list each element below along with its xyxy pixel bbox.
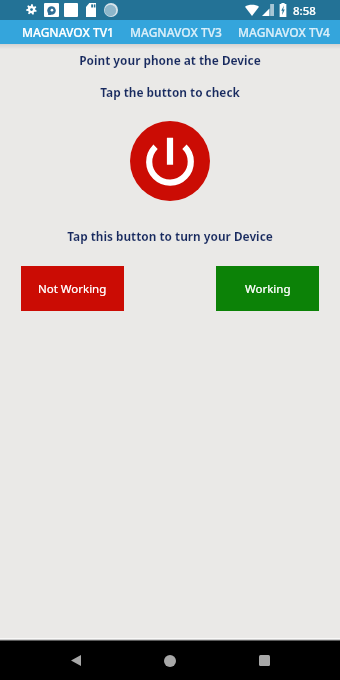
staticText: Working <box>245 281 291 297</box>
staticText: MAGNAVOX TV1 <box>22 24 114 40</box>
button[interactable]: Power <box>130 121 210 201</box>
staticText: Point your phone at the Device <box>79 52 261 68</box>
button[interactable]: MAGNAVOX TV1 <box>14 20 122 44</box>
staticText: Tap the button to check <box>100 84 240 100</box>
button[interactable]: MAGNAVOX TV3 <box>122 20 230 44</box>
button[interactable]: Recents <box>244 641 284 680</box>
staticText: MAGNAVOX TV4 <box>238 24 330 40</box>
staticText: Tap this button to turn your Device <box>67 228 273 244</box>
button[interactable]: Working <box>216 266 319 311</box>
button[interactable]: Home <box>150 641 190 680</box>
button[interactable]: Back <box>56 641 96 680</box>
staticText: 8:58 <box>293 3 316 19</box>
button[interactable]: MAGNAVOX TV4 <box>230 20 338 44</box>
staticText: MAGNAVOX TV3 <box>130 24 222 40</box>
button[interactable]: Not Working <box>21 266 124 311</box>
staticText: Not Working <box>38 281 107 297</box>
